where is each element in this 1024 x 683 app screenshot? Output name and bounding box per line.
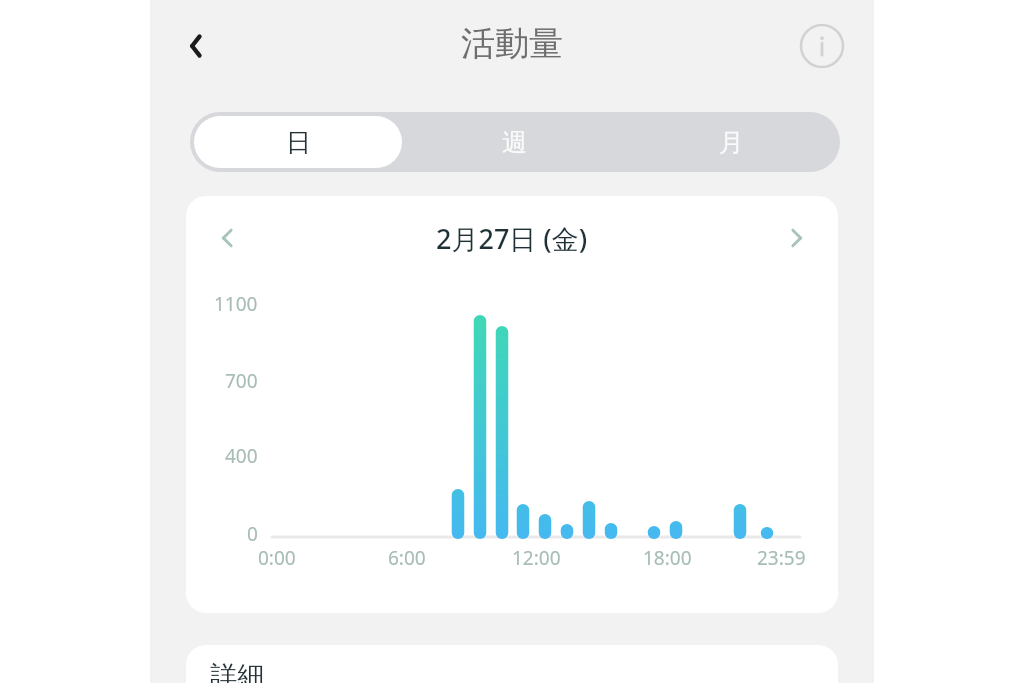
staticText: 6:00 <box>388 545 426 571</box>
staticText: 23:59 <box>757 545 806 571</box>
button[interactable]: 月 <box>623 112 840 172</box>
staticText: 月 <box>719 127 744 158</box>
staticText: 日 <box>286 127 311 158</box>
staticText: 0 <box>247 521 258 547</box>
staticText: 活動量 <box>461 22 563 65</box>
staticText: 12:00 <box>512 545 561 571</box>
staticText: 400 <box>225 443 258 469</box>
staticText: 0:00 <box>258 545 296 571</box>
staticText: 詳細 <box>210 659 264 683</box>
button[interactable]: Previous day <box>202 212 254 264</box>
staticText: 18:00 <box>643 545 692 571</box>
button[interactable]: 日 <box>194 116 402 168</box>
staticText: 700 <box>225 368 258 394</box>
button[interactable]: Next day <box>770 212 822 264</box>
staticText: 2月27日 (金) <box>436 220 588 257</box>
button[interactable]: 詳細 <box>186 645 838 683</box>
staticText: 週 <box>502 127 527 158</box>
button[interactable]: Back <box>168 18 224 74</box>
staticText: 1100 <box>214 291 258 317</box>
button[interactable]: 週 <box>406 112 623 172</box>
button[interactable]: Information <box>794 18 850 74</box>
